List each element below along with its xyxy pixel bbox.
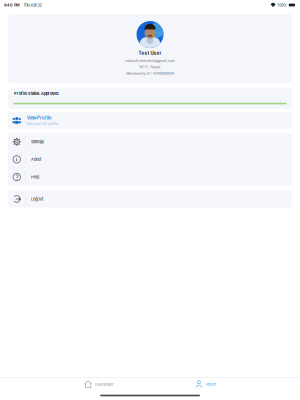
button[interactable]: ?	[8, 168, 292, 186]
button[interactable]: View Profile	[8, 112, 292, 129]
staticText: Thu Apr 22	[23, 3, 41, 7]
staticText: Membership ID: NP00000004	[126, 71, 174, 76]
staticText: See your full profile	[27, 121, 58, 125]
staticText: mahesh.shrestha3@gmail.com	[125, 58, 175, 63]
staticText: 9:40 PM	[4, 3, 20, 7]
staticText: Settings	[31, 139, 44, 144]
button[interactable]: Settings	[8, 133, 292, 151]
staticText: 100%	[277, 3, 287, 7]
staticText: About	[31, 157, 41, 162]
button[interactable]: Dashboard	[81, 378, 116, 391]
staticText: View Profile	[27, 115, 51, 120]
button[interactable]: LogOut	[8, 190, 292, 208]
staticText: Profile	[206, 382, 216, 387]
staticText: NCC: Nepal	[139, 65, 160, 69]
staticText: ?	[15, 173, 18, 181]
staticText: Help	[31, 175, 39, 179]
staticText: Profile Status: Approved	[14, 91, 58, 96]
staticText: LogOut	[31, 197, 43, 201]
staticText: Dashboard	[95, 382, 113, 387]
button[interactable]: Profile	[192, 378, 219, 391]
button[interactable]: About	[8, 151, 292, 168]
staticText: Test User	[138, 50, 161, 56]
